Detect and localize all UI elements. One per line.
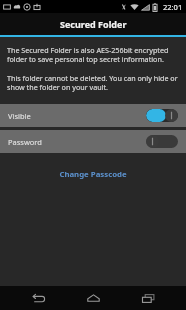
button[interactable]: Visible — [0, 104, 186, 127]
button[interactable]: Recents — [131, 286, 165, 310]
staticText: 22:01 — [163, 2, 183, 12]
button[interactable]: Home — [76, 286, 110, 310]
staticText: This folder cannot be deleted. You can o… — [7, 73, 179, 93]
button[interactable]: Back — [21, 286, 55, 310]
button[interactable]: Change Passcode — [0, 165, 186, 184]
staticText: Password — [8, 137, 42, 147]
staticText: Change Passcode — [59, 169, 127, 180]
staticText: Secured Folder — [60, 18, 127, 30]
staticText: Visible — [8, 111, 31, 121]
button[interactable]: Password — [0, 130, 186, 153]
staticText: The Secured Folder is also AES-256bit en… — [7, 45, 179, 65]
